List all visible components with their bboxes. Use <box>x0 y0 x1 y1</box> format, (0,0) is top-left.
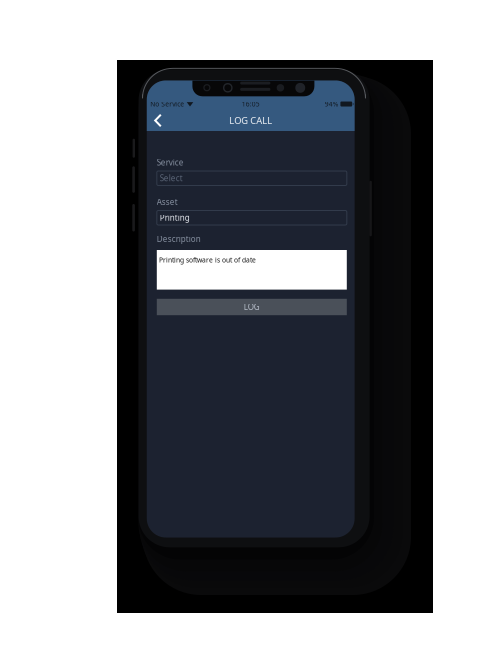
staticText: Service <box>157 157 184 168</box>
staticText: Asset <box>157 196 178 207</box>
staticText: LOG <box>244 302 260 312</box>
staticText: Printing <box>160 212 190 223</box>
staticText: LOG CALL <box>229 114 272 127</box>
button[interactable]: LOG <box>157 299 347 315</box>
staticText: Select <box>160 173 183 183</box>
button[interactable]: Service <box>157 171 347 185</box>
staticText: Printing software is out of date <box>159 255 256 264</box>
staticText: Description <box>157 233 201 244</box>
staticText: 16:05 <box>242 100 260 108</box>
staticText: No Service <box>150 100 184 108</box>
button[interactable]: Back <box>147 109 172 131</box>
staticText: 94% <box>325 100 339 108</box>
button[interactable]: Asset <box>157 210 347 225</box>
